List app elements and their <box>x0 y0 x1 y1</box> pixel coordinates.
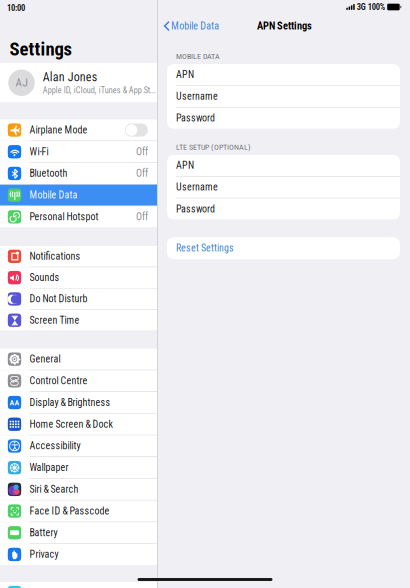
staticText: Airplane Mode <box>29 124 87 136</box>
staticText: MOBILE DATA <box>176 51 220 61</box>
button[interactable]: Privacy <box>0 544 157 565</box>
staticText: Screen Time <box>29 314 79 326</box>
button[interactable]: Mobile Data <box>0 185 157 206</box>
staticText: Apple ID, iCloud, iTunes & App St... <box>43 86 156 95</box>
staticText: Display & Brightness <box>29 397 110 408</box>
staticText: Do Not Disturb <box>29 293 87 305</box>
staticText: Privacy <box>29 549 58 560</box>
button[interactable]: Mobile Data <box>158 18 219 34</box>
button[interactable]: AJ <box>0 63 158 102</box>
button[interactable]: Password <box>167 198 400 220</box>
staticText: 3G 100% <box>357 2 385 12</box>
button[interactable]: App Store <box>0 582 157 588</box>
button[interactable]: Username <box>167 86 400 107</box>
button[interactable]: Battery <box>0 522 157 543</box>
staticText: LTE SETUP (OPTIONAL) <box>176 142 251 152</box>
staticText: Notifications <box>29 250 80 262</box>
staticText: AJ <box>15 76 27 89</box>
staticText: General <box>29 353 60 365</box>
button[interactable]: Home Screen & Dock <box>0 414 157 435</box>
button[interactable]: Bluetooth <box>0 163 157 184</box>
staticText: Mobile Data <box>171 20 219 32</box>
staticText: Password <box>176 203 215 215</box>
staticText: Bluetooth <box>29 168 67 179</box>
staticText: Home Screen & Dock <box>29 418 113 430</box>
button[interactable]: Airplane Mode <box>0 119 157 141</box>
staticText: Sounds <box>29 272 59 283</box>
staticText: Wallpaper <box>29 462 68 473</box>
staticText: Password <box>176 112 215 124</box>
staticText: 10:00 <box>7 3 25 13</box>
button[interactable]: Wallpaper <box>0 457 157 478</box>
button[interactable]: Personal Hotspot <box>0 206 157 227</box>
staticText: APN Settings <box>257 20 312 32</box>
button[interactable]: Password <box>167 108 400 129</box>
button[interactable]: Reset Settings <box>167 237 400 259</box>
button[interactable]: AA <box>0 392 157 413</box>
staticText: Face ID & Passcode <box>29 505 109 517</box>
staticText: Username <box>176 181 218 193</box>
staticText: Reset Settings <box>176 242 234 254</box>
button[interactable]: Notifications <box>0 246 157 267</box>
staticText: Control Centre <box>29 375 87 387</box>
button[interactable]: Siri & Search <box>0 479 157 500</box>
staticText: Off <box>136 146 148 158</box>
button[interactable]: Username <box>167 177 400 198</box>
button[interactable]: Accessibility <box>0 435 157 456</box>
staticText: APN <box>176 69 194 80</box>
staticText: Personal Hotspot <box>29 211 98 223</box>
staticText: Siri & Search <box>29 483 78 495</box>
staticText: APN <box>176 159 194 171</box>
button[interactable]: Do Not Disturb <box>0 289 157 309</box>
staticText: AA <box>9 398 19 407</box>
button[interactable]: Sounds <box>0 267 157 288</box>
button[interactable]: APN <box>167 64 400 85</box>
button[interactable]: APN <box>167 155 400 176</box>
staticText: Alan Jones <box>43 70 97 84</box>
button[interactable]: Screen Time <box>0 310 157 331</box>
staticText: Mobile Data <box>29 189 77 201</box>
staticText: Off <box>136 168 148 179</box>
staticText: Off <box>136 211 148 223</box>
staticText: Wi-Fi <box>29 146 48 158</box>
staticText: Settings <box>9 38 71 60</box>
button[interactable]: General <box>0 349 157 370</box>
staticText: Username <box>176 90 218 102</box>
button[interactable]: Wi-Fi <box>0 141 157 162</box>
button[interactable]: Face ID & Passcode <box>0 500 157 522</box>
staticText: Battery <box>29 527 57 539</box>
staticText: Accessibility <box>29 440 80 452</box>
button[interactable]: Control Centre <box>0 370 157 391</box>
